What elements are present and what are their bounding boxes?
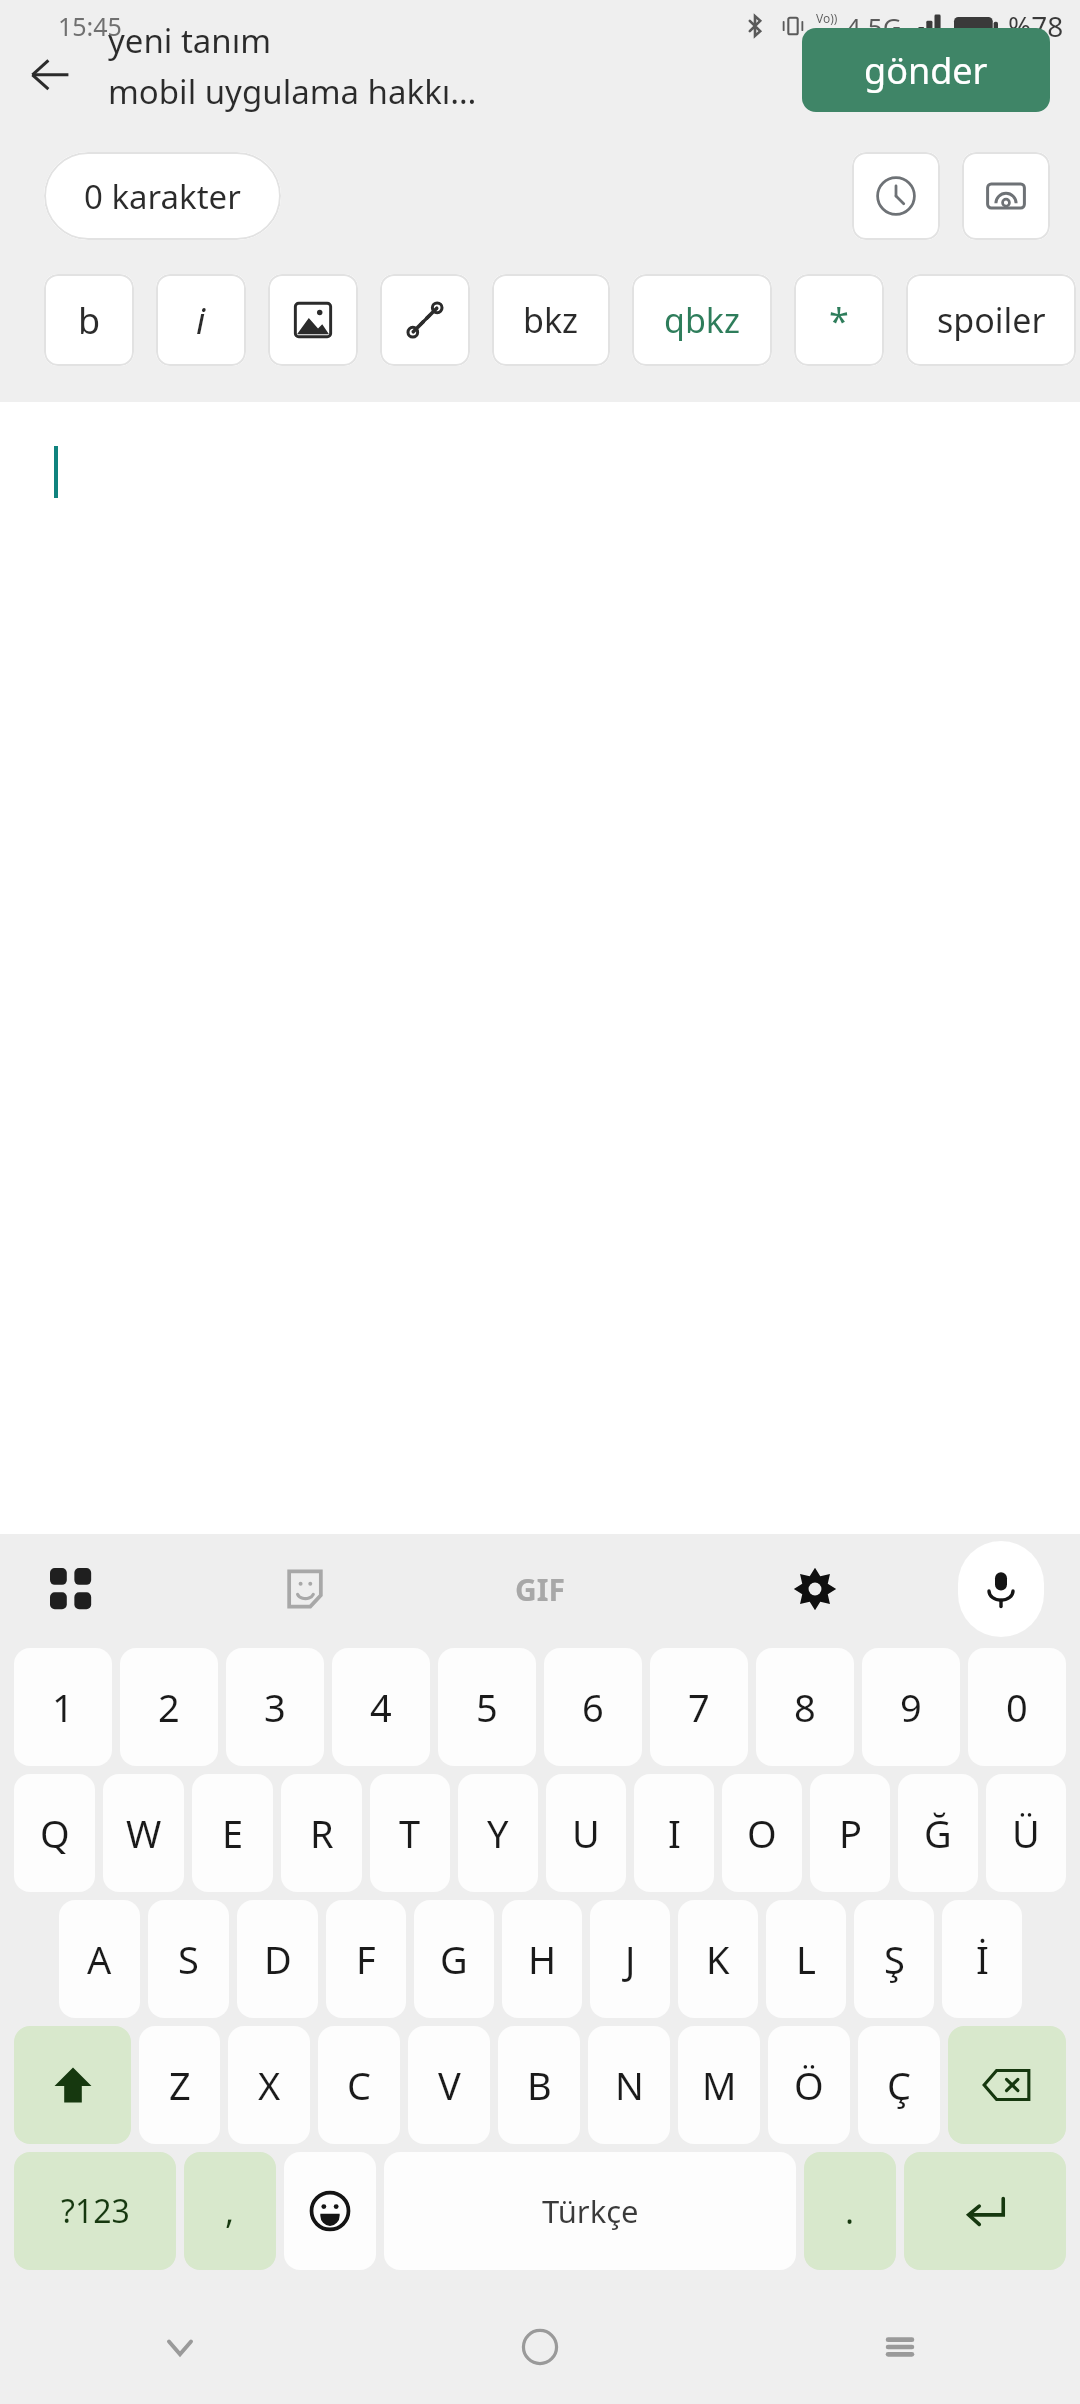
button[interactable]: gönder bbox=[802, 28, 1050, 112]
button[interactable]: spoiler bbox=[906, 274, 1076, 366]
staticText: Ş bbox=[884, 1933, 905, 1985]
staticText: F bbox=[356, 1933, 376, 1985]
button[interactable]: Z bbox=[139, 2026, 220, 2144]
button[interactable]: 8 bbox=[756, 1648, 854, 1766]
button[interactable]: 5 bbox=[438, 1648, 536, 1766]
button[interactable]: B bbox=[498, 2026, 580, 2144]
button[interactable]: İ bbox=[942, 1900, 1022, 2018]
button[interactable]: 3 bbox=[226, 1648, 324, 1766]
staticText: Y bbox=[487, 1807, 509, 1859]
button[interactable]: Ç bbox=[858, 2026, 940, 2144]
button[interactable]: Bağlantı bbox=[380, 274, 470, 366]
staticText: D bbox=[264, 1933, 292, 1985]
button[interactable]: Enter bbox=[904, 2152, 1066, 2270]
button[interactable]: 9 bbox=[862, 1648, 960, 1766]
button[interactable]: Emoji bbox=[284, 2152, 376, 2270]
button[interactable]: P bbox=[810, 1774, 890, 1892]
button[interactable]: Ayarlar bbox=[780, 1554, 850, 1624]
button[interactable]: 4 bbox=[332, 1648, 430, 1766]
staticText: O bbox=[747, 1807, 777, 1859]
button[interactable]: 7 bbox=[650, 1648, 748, 1766]
button[interactable]: Görsel ekle bbox=[268, 274, 358, 366]
button[interactable]: W bbox=[103, 1774, 184, 1892]
button[interactable]: R bbox=[281, 1774, 362, 1892]
button[interactable]: Mikrofon bbox=[958, 1541, 1044, 1637]
staticText: %78 bbox=[1008, 7, 1064, 45]
button[interactable]: Ğ bbox=[898, 1774, 978, 1892]
button[interactable]: Geri bbox=[0, 2290, 360, 2404]
staticText: Ğ bbox=[924, 1807, 952, 1859]
button[interactable]: M bbox=[678, 2026, 760, 2144]
staticText: K bbox=[706, 1933, 730, 1985]
staticText: Ö bbox=[794, 2059, 824, 2111]
button[interactable]: Nokta bbox=[804, 2152, 896, 2270]
button[interactable]: O bbox=[722, 1774, 802, 1892]
button[interactable]: N bbox=[588, 2026, 670, 2144]
staticText: W bbox=[126, 1807, 162, 1859]
button[interactable]: C bbox=[318, 2026, 400, 2144]
button[interactable]: Y bbox=[458, 1774, 538, 1892]
button[interactable]: T bbox=[370, 1774, 450, 1892]
staticText: Z bbox=[169, 2059, 191, 2111]
staticText: Ç bbox=[887, 2059, 912, 2111]
staticText: I bbox=[668, 1807, 681, 1859]
staticText: L bbox=[796, 1933, 816, 1985]
button[interactable]: Menü bbox=[36, 1554, 106, 1624]
staticText: mobil uygulama hakkı… bbox=[108, 69, 477, 114]
button[interactable]: Çıkartma bbox=[270, 1554, 340, 1624]
button[interactable]: Ü bbox=[986, 1774, 1066, 1892]
button[interactable]: S bbox=[148, 1900, 229, 2018]
staticText: G bbox=[440, 1933, 468, 1985]
button[interactable]: Görsel bbox=[962, 152, 1050, 240]
button[interactable]: I bbox=[634, 1774, 714, 1892]
button[interactable]: 0 karakter bbox=[44, 152, 281, 240]
staticText: 0 karakter bbox=[84, 174, 241, 219]
staticText: qbkz bbox=[664, 297, 740, 343]
button[interactable]: 0 bbox=[968, 1648, 1066, 1766]
staticText: i bbox=[196, 296, 206, 345]
staticText: , bbox=[225, 2188, 235, 2234]
button[interactable]: Türkçe bbox=[384, 2152, 796, 2270]
button[interactable]: 1 bbox=[14, 1648, 112, 1766]
staticText: 5 bbox=[476, 1681, 498, 1733]
button[interactable]: V bbox=[408, 2026, 490, 2144]
button[interactable]: 6 bbox=[544, 1648, 642, 1766]
button[interactable]: b bbox=[44, 274, 134, 366]
button[interactable]: Sil bbox=[948, 2026, 1066, 2144]
staticText: 8 bbox=[794, 1681, 816, 1733]
button[interactable]: Q bbox=[14, 1774, 95, 1892]
button[interactable]: Büyük harf bbox=[14, 2026, 131, 2144]
button[interactable]: GIF bbox=[495, 1544, 585, 1634]
button[interactable]: Geri bbox=[14, 38, 86, 110]
button[interactable]: Virgül bbox=[184, 2152, 276, 2270]
staticText: N bbox=[615, 2059, 644, 2111]
button[interactable]: 2 bbox=[120, 1648, 218, 1766]
button[interactable]: L bbox=[766, 1900, 846, 2018]
button[interactable]: Sayılar bbox=[14, 2152, 176, 2270]
button[interactable]: yıldız bbox=[794, 274, 884, 366]
button[interactable]: bkz bbox=[492, 274, 610, 366]
button[interactable]: K bbox=[678, 1900, 758, 2018]
staticText: U bbox=[572, 1807, 600, 1859]
button[interactable]: J bbox=[590, 1900, 670, 2018]
staticText: Vo)) bbox=[816, 10, 838, 26]
button[interactable]: i bbox=[156, 274, 246, 366]
button[interactable]: Ö bbox=[768, 2026, 850, 2144]
button[interactable]: U bbox=[546, 1774, 626, 1892]
button[interactable]: F bbox=[326, 1900, 406, 2018]
button[interactable]: Son uygulamalar bbox=[720, 2290, 1080, 2404]
button[interactable]: G bbox=[414, 1900, 494, 2018]
button[interactable]: Ş bbox=[854, 1900, 934, 2018]
button[interactable]: qbkz bbox=[632, 274, 772, 366]
button[interactable]: D bbox=[237, 1900, 318, 2018]
staticText: b bbox=[78, 296, 101, 345]
button[interactable]: Zamanlayıcı bbox=[852, 152, 940, 240]
staticText: 4.5G bbox=[846, 9, 902, 44]
staticText: 9 bbox=[900, 1681, 922, 1733]
button[interactable]: A bbox=[59, 1900, 140, 2018]
button[interactable]: Ana ekran bbox=[360, 2290, 720, 2404]
button[interactable]: E bbox=[192, 1774, 273, 1892]
button[interactable]: X bbox=[228, 2026, 310, 2144]
staticText: 0 bbox=[1006, 1681, 1028, 1733]
button[interactable]: H bbox=[502, 1900, 582, 2018]
